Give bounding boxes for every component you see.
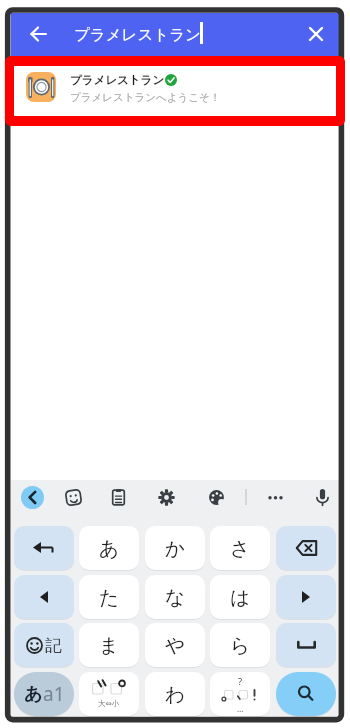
- staticText: あ: [24, 683, 43, 706]
- button[interactable]: わ: [145, 672, 205, 716]
- button[interactable]: [26, 18, 58, 51]
- button[interactable]: [14, 526, 74, 570]
- button[interactable]: さ: [210, 526, 270, 570]
- button[interactable]: [21, 486, 44, 509]
- button[interactable]: [107, 486, 130, 509]
- button[interactable]: [276, 672, 336, 716]
- button[interactable]: [155, 486, 178, 509]
- staticText: は: [230, 585, 250, 610]
- staticText: プラメレストラン: [70, 73, 165, 87]
- button[interactable]: プラメレストラン: [14, 66, 336, 116]
- staticText: プラメレストランへようこそ！: [70, 91, 221, 104]
- staticText: a1: [43, 681, 65, 707]
- staticText: …: [237, 703, 244, 714]
- button[interactable]: 大⇔小: [79, 672, 139, 716]
- button[interactable]: [276, 623, 336, 667]
- button[interactable]: [311, 486, 334, 509]
- button[interactable]: [305, 20, 327, 48]
- button[interactable]: [276, 575, 336, 619]
- button[interactable]: [205, 486, 228, 509]
- staticText: ま: [99, 633, 119, 658]
- button[interactable]: ?: [210, 672, 270, 716]
- staticText: た: [99, 585, 119, 610]
- staticText: な: [165, 585, 185, 610]
- button[interactable]: や: [145, 623, 205, 667]
- button[interactable]: [14, 575, 74, 619]
- staticText: ?: [238, 675, 243, 688]
- staticText: 大⇔小: [98, 699, 120, 708]
- staticText: ら: [230, 633, 250, 658]
- button[interactable]: な: [145, 575, 205, 619]
- button[interactable]: [276, 526, 336, 570]
- button[interactable]: [62, 486, 85, 509]
- button[interactable]: ま: [79, 623, 139, 667]
- button[interactable]: [264, 486, 287, 509]
- staticText: さ: [230, 536, 250, 561]
- button[interactable]: ら: [210, 623, 270, 667]
- staticText: わ: [165, 682, 185, 707]
- button[interactable]: あ: [79, 526, 139, 570]
- staticText: あ: [99, 536, 119, 561]
- button[interactable]: 記: [14, 623, 74, 667]
- button[interactable]: あ: [14, 672, 74, 716]
- button[interactable]: た: [79, 575, 139, 619]
- staticText: 記: [45, 635, 62, 656]
- button[interactable]: は: [210, 575, 270, 619]
- staticText: プラメレストラン: [74, 25, 201, 45]
- staticText: や: [165, 633, 185, 658]
- staticText: か: [165, 536, 185, 561]
- button[interactable]: か: [145, 526, 205, 570]
